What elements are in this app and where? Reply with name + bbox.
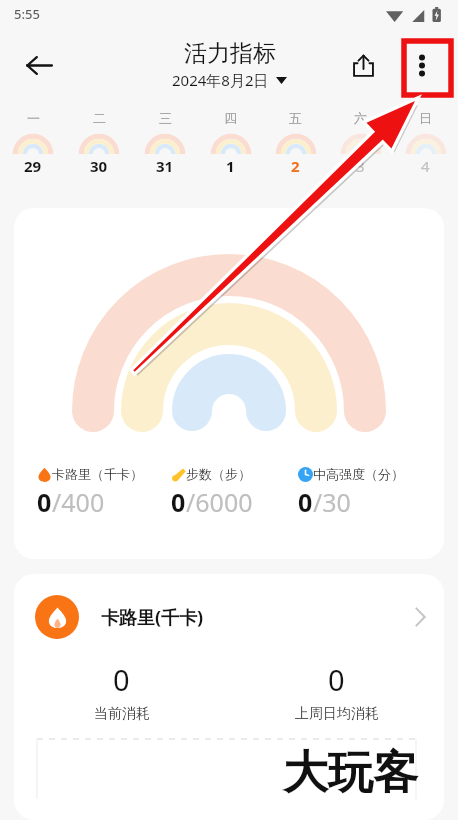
button[interactable]: 卡路里（千卡）: [14, 208, 444, 559]
button[interactable]: 二: [66, 102, 132, 196]
staticText: 日: [419, 110, 432, 126]
button[interactable]: 卡路里（千卡）: [37, 466, 171, 519]
button[interactable]: 步数（步）: [171, 466, 298, 519]
staticText: 30: [90, 156, 108, 176]
staticText: 0: [113, 660, 130, 699]
staticText: 活力指标: [184, 39, 276, 68]
button[interactable]: 卡路里(千卡): [14, 574, 444, 660]
button[interactable]: 0: [14, 660, 229, 723]
staticText: 29: [24, 156, 42, 176]
staticText: 上周日均消耗: [295, 705, 379, 723]
button[interactable]: Share: [340, 42, 386, 88]
staticText: 卡路里(千卡): [101, 605, 204, 630]
staticText: 卡路里（千卡）: [52, 466, 143, 482]
button[interactable]: 四: [198, 102, 263, 196]
staticText: 2: [291, 156, 300, 176]
staticText: 5:55: [14, 5, 40, 23]
staticText: 当前消耗: [94, 705, 150, 723]
button[interactable]: 一: [0, 102, 66, 196]
staticText: 一: [27, 110, 40, 126]
staticText: 步数（步）: [186, 466, 251, 482]
staticText: 1: [226, 156, 235, 176]
staticText: /6000: [186, 485, 253, 519]
button[interactable]: 六: [328, 102, 393, 196]
button[interactable]: 0: [229, 660, 444, 723]
staticText: 3: [356, 156, 365, 176]
staticText: 0: [328, 660, 345, 699]
staticText: 4: [421, 156, 430, 176]
staticText: 四: [224, 110, 237, 126]
staticText: 0: [298, 485, 313, 519]
button[interactable]: Back: [12, 38, 66, 92]
staticText: /30: [313, 485, 351, 519]
staticText: 2024年8月2日: [172, 70, 269, 90]
staticText: 三: [159, 110, 172, 126]
staticText: 31: [156, 156, 174, 176]
staticText: /400: [52, 485, 105, 519]
button[interactable]: More options: [398, 41, 446, 89]
button[interactable]: 五: [263, 102, 328, 196]
button[interactable]: 日: [393, 102, 458, 196]
staticText: 六: [354, 110, 367, 126]
staticText: 五: [289, 110, 302, 126]
staticText: 0: [171, 485, 186, 519]
button[interactable]: 2024年8月2日: [169, 69, 290, 91]
staticText: 大玩客: [283, 745, 418, 802]
button[interactable]: 三: [132, 102, 198, 196]
staticText: 中高强度（分）: [313, 466, 404, 482]
staticText: 二: [93, 110, 106, 126]
staticText: 0: [37, 485, 52, 519]
button[interactable]: 中高强度（分）: [298, 466, 434, 519]
